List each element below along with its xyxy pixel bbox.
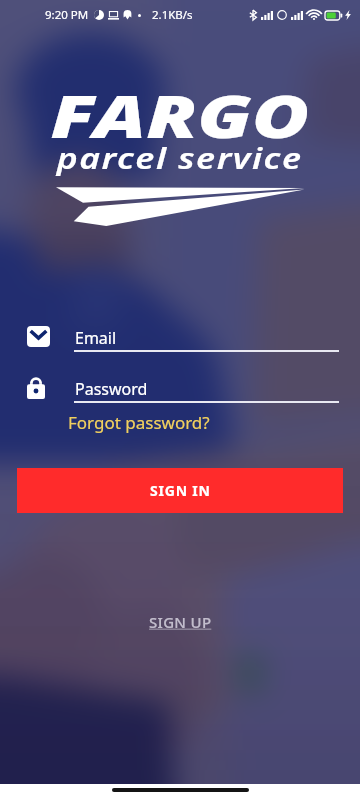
staticText: SIGN IN: [150, 481, 211, 500]
button[interactable]: SIGN UP: [143, 606, 218, 638]
staticText: Email: [75, 327, 117, 349]
staticText: 2.1KB/s: [152, 7, 193, 23]
staticText: FARGO: [50, 76, 310, 155]
staticText: SIGN UP: [149, 612, 212, 632]
button[interactable]: SIGN IN: [17, 468, 343, 513]
staticText: 9:20 PM: [45, 7, 89, 23]
button[interactable]: Email: [0, 325, 360, 357]
button[interactable]: Password: [0, 376, 360, 408]
button[interactable]: Forgot password?: [68, 411, 210, 434]
other: Home: [112, 788, 249, 792]
staticText: Password: [75, 378, 148, 400]
staticText: parcel service: [57, 139, 303, 177]
staticText: Forgot password?: [68, 411, 210, 434]
